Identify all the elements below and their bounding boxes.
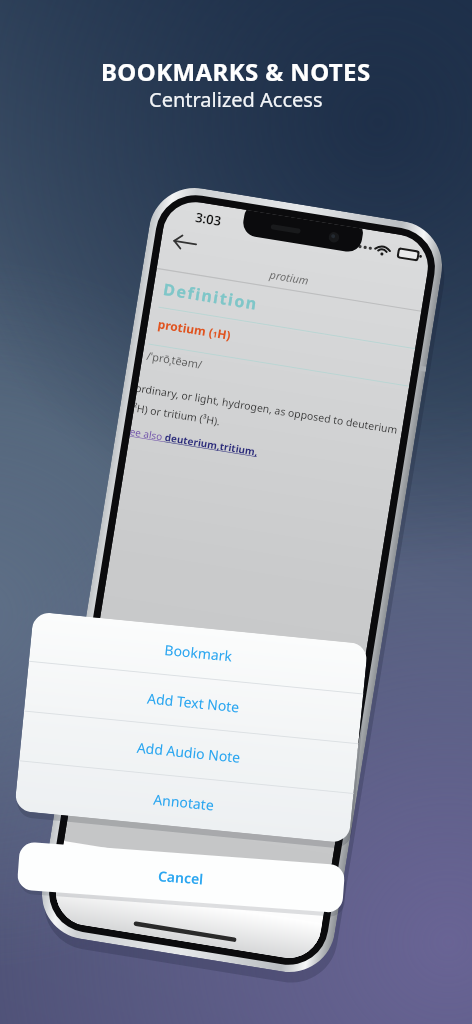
- button[interactable]: Add Text Note: [22, 678, 362, 730]
- button[interactable]: Back: [148, 230, 194, 270]
- button[interactable]: Annotate: [30, 778, 370, 830]
- button[interactable]: Add Audio Note: [26, 728, 366, 780]
- button[interactable]: Cancel: [18, 850, 348, 898]
- button[interactable]: Bookmark: [18, 628, 358, 680]
